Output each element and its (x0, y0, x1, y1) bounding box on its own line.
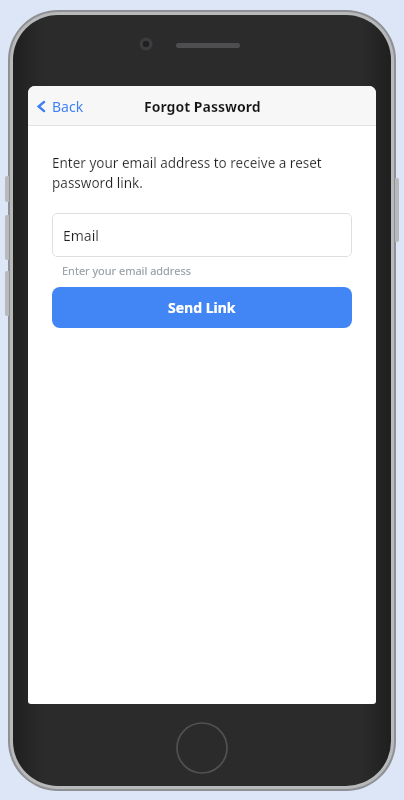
button[interactable]: Email (52, 213, 352, 257)
button[interactable]: Send Link (52, 287, 352, 328)
staticText: Enter your email address (62, 263, 191, 278)
staticText: Enter your email address to receive a re… (52, 154, 352, 192)
staticText: Send Link (168, 298, 236, 317)
staticText: Email (63, 226, 99, 245)
staticText: Forgot Password (144, 97, 261, 116)
staticText: Back (52, 97, 84, 116)
button[interactable]: Back (28, 86, 96, 126)
